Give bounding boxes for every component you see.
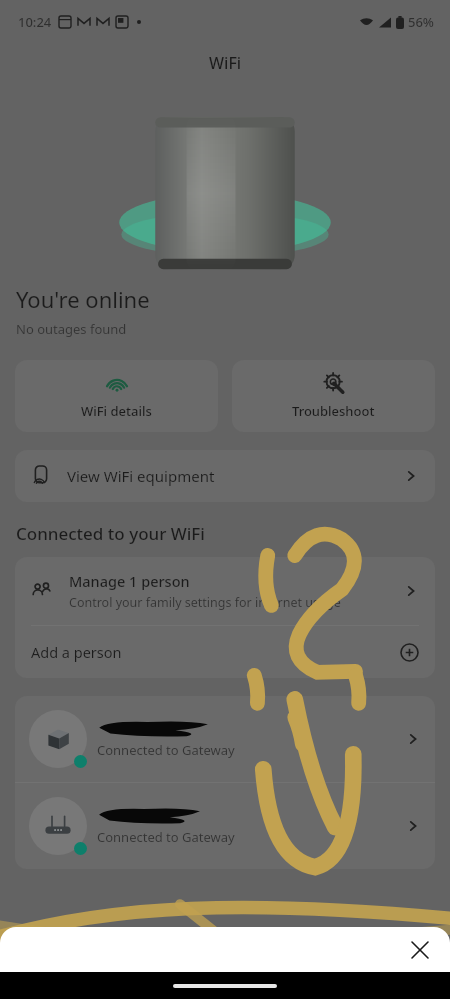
- button[interactable]: Connected to Gateway: [15, 783, 435, 869]
- button[interactable]: Connected to Gateway: [15, 696, 435, 782]
- staticText: WiFi details: [81, 402, 152, 420]
- staticText: Connected to Gateway: [97, 828, 235, 846]
- other: Add a person: [400, 643, 419, 662]
- staticText: Connected to your WiFi: [16, 522, 205, 545]
- button[interactable]: Troubleshoot: [232, 360, 435, 432]
- button[interactable]: WiFi details: [15, 360, 218, 432]
- staticText: 10:24: [18, 13, 52, 31]
- staticText: Control your family settings for interne…: [69, 594, 341, 611]
- button[interactable]: View WiFi equipment: [15, 450, 435, 502]
- button[interactable]: Close: [404, 934, 436, 966]
- staticText: Add a person: [31, 642, 400, 662]
- staticText: Manage 1 person: [69, 571, 190, 591]
- button[interactable]: Manage 1 person: [15, 557, 435, 625]
- staticText: No outages found: [16, 320, 127, 338]
- button[interactable]: Add a person: [15, 626, 435, 678]
- staticText: WiFi: [209, 52, 242, 74]
- staticText: You're online: [16, 284, 150, 314]
- staticText: 56%: [408, 13, 434, 31]
- staticText: Connected to Gateway: [97, 741, 235, 759]
- staticText: Troubleshoot: [292, 402, 375, 420]
- staticText: View WiFi equipment: [67, 466, 403, 486]
